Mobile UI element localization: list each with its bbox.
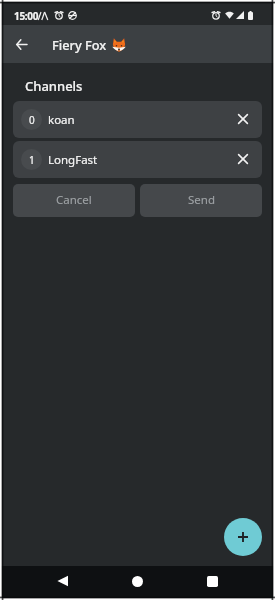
button[interactable]: Cancel (13, 184, 135, 217)
button[interactable]: Add (224, 518, 262, 556)
staticText: Send (188, 192, 215, 208)
button[interactable]: Back (8, 31, 35, 58)
staticText: 0 (29, 113, 35, 127)
staticText: koan (48, 112, 75, 128)
button[interactable]: Back (45, 564, 80, 598)
button[interactable]: Remove channel (231, 108, 255, 132)
staticText: LongFast (48, 152, 98, 168)
button[interactable]: 1 (13, 141, 262, 178)
button[interactable]: Home (120, 564, 155, 598)
staticText: Cancel (56, 192, 92, 208)
button[interactable]: Remove channel (231, 148, 255, 172)
staticText: Fiery Fox (52, 36, 107, 53)
staticText: 1 (29, 153, 35, 167)
button[interactable]: 0 (13, 101, 262, 138)
button[interactable]: Recent apps (195, 564, 230, 598)
button[interactable]: Send (140, 184, 262, 217)
staticText: 15:00 (14, 9, 39, 23)
staticText: Channels (25, 77, 83, 95)
